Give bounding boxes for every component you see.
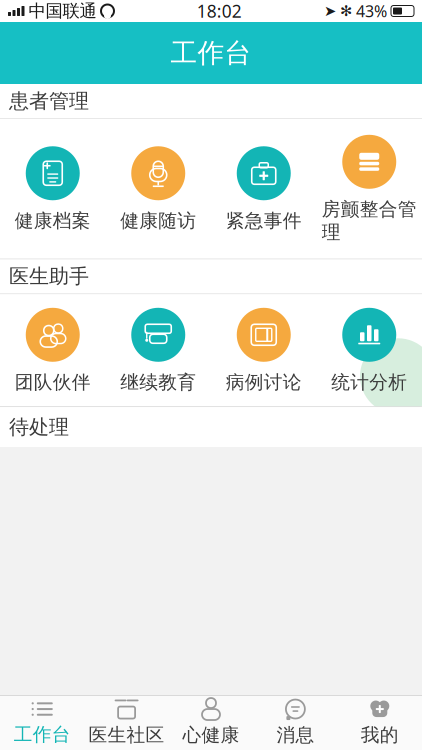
button[interactable]: 病例讨论 <box>211 306 316 396</box>
staticText: 统计分析 <box>331 371 407 394</box>
button[interactable]: 健康随访 <box>105 144 211 234</box>
staticText: 我的 <box>361 723 399 746</box>
staticText: 房颤整合管理 <box>322 198 417 244</box>
button[interactable]: 紧急事件 <box>211 144 316 234</box>
staticText: 健康档案 <box>15 209 91 232</box>
button[interactable]: 团队伙伴 <box>0 306 105 396</box>
staticText: 工作台 <box>14 723 71 746</box>
button[interactable]: 继续教育 <box>105 306 211 396</box>
staticText: 医生社区 <box>89 723 165 746</box>
staticText: 待处理 <box>9 415 69 439</box>
staticText: 工作台 <box>170 37 251 69</box>
staticText: 消息 <box>276 723 314 746</box>
staticText: 医生助手 <box>9 264 89 289</box>
button[interactable]: 心健康 <box>169 693 253 750</box>
staticText: 中国联通 <box>28 0 96 22</box>
staticText: 继续教育 <box>120 371 196 394</box>
staticText: 43% <box>356 0 387 22</box>
staticText: 患者管理 <box>9 89 89 113</box>
staticText: 病例讨论 <box>226 371 302 394</box>
button[interactable]: 消息 <box>253 693 338 750</box>
button[interactable]: 我的 <box>338 693 422 750</box>
button[interactable]: 房颤整合管理 <box>316 133 422 246</box>
staticText: ✻ <box>340 3 352 19</box>
staticText: 团队伙伴 <box>15 371 91 394</box>
staticText: 18:02 <box>197 0 242 22</box>
staticText: 心健康 <box>182 723 239 746</box>
button[interactable]: 医生社区 <box>84 693 169 750</box>
staticText: 紧急事件 <box>226 209 302 232</box>
button[interactable]: 健康档案 <box>0 144 105 234</box>
staticText: 健康随访 <box>120 209 196 232</box>
button[interactable]: 工作台 <box>0 694 84 750</box>
staticText: ➤ <box>324 3 336 19</box>
button[interactable]: 统计分析 <box>316 306 422 396</box>
